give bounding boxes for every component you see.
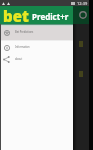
button[interactable]: Refresh — [76, 6, 89, 24]
staticText: bet — [3, 6, 29, 24]
staticText: about — [15, 57, 23, 61]
button[interactable]: about — [0, 53, 73, 65]
staticText: 12:39 — [77, 1, 88, 6]
staticText: Bet Predictions — [15, 30, 34, 34]
button[interactable]: Information — [0, 41, 73, 53]
button[interactable]: Bet Predictions — [0, 26, 73, 38]
staticText: Predict+r — [32, 11, 69, 22]
staticText: Information — [15, 45, 30, 49]
